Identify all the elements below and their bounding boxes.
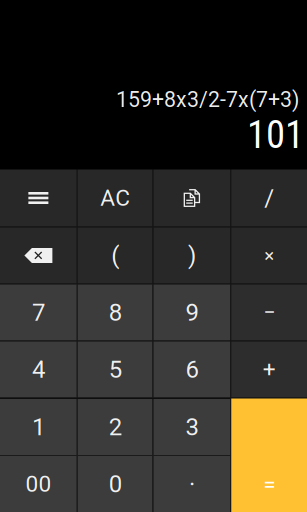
button[interactable]: - xyxy=(231,284,307,340)
staticText: = xyxy=(263,471,275,497)
button[interactable]: Equals xyxy=(231,398,307,512)
staticText: 159+8x3/2-7x(7+3) xyxy=(116,87,299,112)
button[interactable]: 4 xyxy=(0,341,77,397)
button[interactable]: ( xyxy=(78,227,153,283)
button[interactable]: 3 xyxy=(153,399,230,455)
button[interactable]: 6 xyxy=(153,341,230,397)
staticText: 9 xyxy=(185,298,198,326)
button[interactable]: 0 xyxy=(78,456,153,512)
button[interactable]: 1 xyxy=(0,399,77,455)
staticText: × xyxy=(264,245,274,266)
staticText: 101 xyxy=(247,112,304,157)
staticText: − xyxy=(263,300,275,325)
staticText: 0 xyxy=(109,470,122,498)
staticText: / xyxy=(264,184,274,212)
staticText: · xyxy=(189,470,195,498)
staticText: 2 xyxy=(109,413,122,441)
button[interactable]: Menu xyxy=(0,169,77,226)
staticText: AC xyxy=(100,185,130,211)
staticText: + xyxy=(263,356,276,383)
staticText: 1 xyxy=(32,413,45,441)
button[interactable]: 9 xyxy=(153,284,230,340)
button[interactable]: 8 xyxy=(78,284,153,340)
button[interactable]: ) xyxy=(153,227,230,283)
staticText: 3 xyxy=(185,413,198,441)
button[interactable]: 00 xyxy=(0,456,77,512)
button[interactable]: + xyxy=(231,341,307,397)
button[interactable]: . xyxy=(153,456,230,512)
button[interactable]: Copy xyxy=(153,169,230,226)
staticText: 8 xyxy=(109,298,122,326)
staticText: 4 xyxy=(32,355,45,383)
staticText: 7 xyxy=(32,298,45,326)
button[interactable]: 5 xyxy=(78,341,153,397)
staticText: 00 xyxy=(25,471,51,497)
staticText: ( xyxy=(111,241,119,269)
staticText: 5 xyxy=(109,355,122,383)
button[interactable]: 7 xyxy=(0,284,77,340)
button[interactable]: AC xyxy=(78,169,153,226)
staticText: ) xyxy=(188,241,196,269)
button[interactable]: × xyxy=(231,227,307,283)
button[interactable]: Delete xyxy=(0,227,77,283)
button[interactable]: / xyxy=(231,169,307,226)
staticText: 6 xyxy=(185,355,198,383)
button[interactable]: 2 xyxy=(78,399,153,455)
